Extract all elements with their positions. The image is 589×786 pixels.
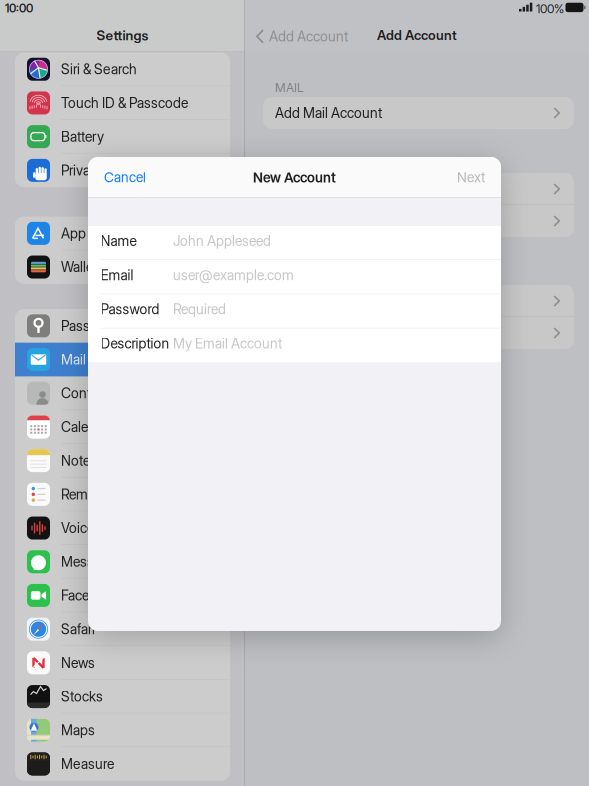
button[interactable]: Add Account <box>245 20 359 53</box>
staticText: Calendar <box>61 419 115 435</box>
button[interactable]: Messages <box>15 545 230 579</box>
staticText: Password <box>100 301 159 318</box>
button[interactable]: Measure <box>15 747 230 781</box>
button[interactable] <box>263 285 574 317</box>
button[interactable]: Touch ID & Passcode <box>15 86 230 120</box>
staticText: Siri & Search <box>61 61 137 78</box>
staticText: Add Account <box>269 28 348 45</box>
button[interactable]: Contacts <box>15 376 230 410</box>
staticText: Maps <box>61 722 95 739</box>
staticText: Measure <box>61 756 114 772</box>
staticText: Cancel <box>104 169 146 186</box>
staticText: Required <box>173 301 226 318</box>
button[interactable] <box>263 205 574 237</box>
button[interactable]: News <box>15 646 230 680</box>
staticText: MAIL <box>275 80 304 95</box>
button[interactable]: Battery <box>15 120 230 153</box>
staticText: News <box>61 654 95 671</box>
button[interactable]: App Store <box>15 216 230 250</box>
button[interactable]: Password <box>88 294 501 328</box>
button[interactable]: Add Mail Account <box>263 97 574 129</box>
staticText: Notes <box>61 452 97 469</box>
staticText: Contacts <box>61 385 117 402</box>
button[interactable]: FaceTime <box>15 579 230 612</box>
staticText: Stocks <box>61 688 103 705</box>
staticText: Next <box>457 169 485 186</box>
staticText: Email <box>100 267 133 283</box>
button[interactable]: Safari <box>15 612 230 646</box>
staticText: Privacy <box>61 162 104 179</box>
button[interactable]: Stocks <box>15 680 230 713</box>
staticText: Touch ID & Passcode <box>61 95 188 111</box>
staticText: Reminders <box>61 486 125 503</box>
button[interactable]: Privacy <box>15 153 230 187</box>
staticText: My Email Account <box>173 335 282 352</box>
button[interactable] <box>263 317 574 349</box>
staticText: FaceTime <box>61 587 118 604</box>
staticText: Mail <box>61 351 86 368</box>
staticText: Settings <box>96 27 148 43</box>
staticText: Messages <box>61 553 123 570</box>
staticText: Add Account <box>377 27 457 43</box>
button[interactable]: Passwords <box>15 309 230 343</box>
button[interactable]: Next <box>441 157 501 198</box>
button[interactable]: Reminders <box>15 477 230 511</box>
button[interactable]: Cancel <box>88 157 162 198</box>
staticText: Wallet <box>61 259 97 275</box>
staticText: Voice Memos <box>61 520 143 536</box>
button[interactable] <box>263 173 574 205</box>
staticText: Description <box>100 335 169 352</box>
staticText: Passwords <box>61 317 127 334</box>
staticText: Battery <box>61 128 104 145</box>
button[interactable]: Wallet <box>15 250 230 284</box>
button[interactable]: Description <box>88 329 501 362</box>
staticText: John Appleseed <box>173 232 271 249</box>
staticText: 10:00 <box>5 1 33 15</box>
button[interactable]: Email <box>88 260 501 294</box>
button[interactable]: Calendar <box>15 410 230 444</box>
staticText: Add Mail Account <box>275 105 382 121</box>
button[interactable]: Name <box>88 226 501 259</box>
staticText: user@example.com <box>173 267 294 283</box>
button[interactable]: Mail <box>15 343 230 376</box>
staticText: Safari <box>61 621 95 638</box>
staticText: App Store <box>61 225 121 242</box>
staticText: 100% <box>536 2 564 16</box>
staticText: New Account <box>253 169 336 186</box>
button[interactable]: Notes <box>15 444 230 477</box>
staticText: Name <box>100 232 136 249</box>
button[interactable]: Maps <box>15 713 230 747</box>
button[interactable]: Siri & Search <box>15 52 230 86</box>
button[interactable]: Voice Memos <box>15 511 230 545</box>
